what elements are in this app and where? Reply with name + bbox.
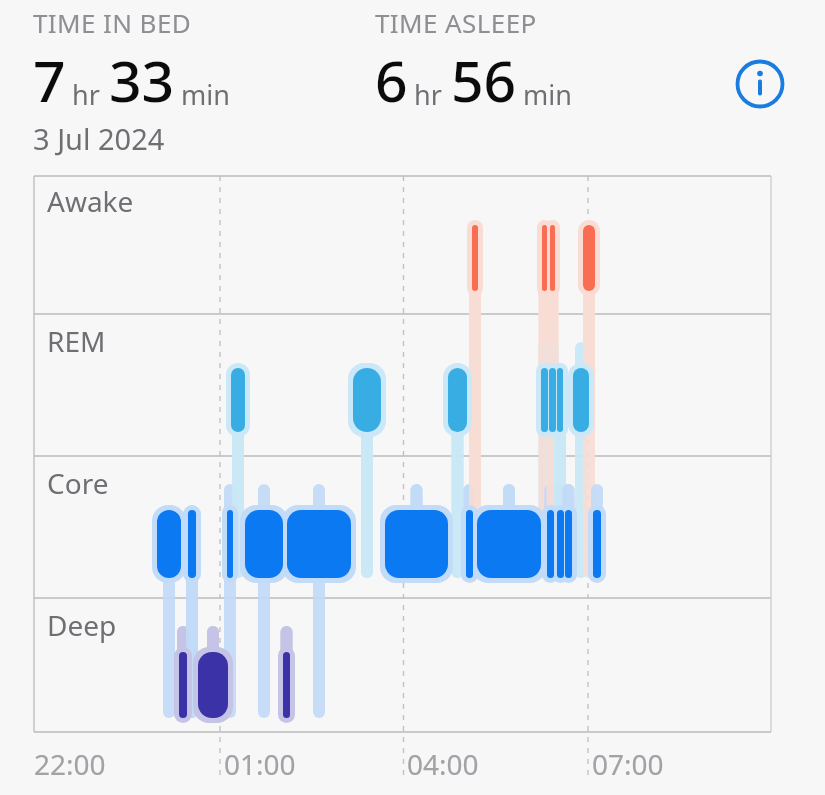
staticText: REM xyxy=(47,322,106,360)
staticText: 3 Jul 2024 xyxy=(33,119,165,158)
staticText: 6 xyxy=(375,41,408,119)
staticText: TIME IN BED xyxy=(33,5,192,40)
staticText: 22:00 xyxy=(34,745,106,783)
button[interactable]: About sleep stages xyxy=(730,54,790,114)
button[interactable]: Sleep stages chart xyxy=(0,0,825,795)
staticText: 33 xyxy=(109,41,175,119)
staticText: Deep xyxy=(47,606,117,644)
staticText: hr xyxy=(414,76,442,113)
staticText: min xyxy=(523,76,572,113)
staticText: 01:00 xyxy=(224,745,296,783)
staticText: TIME ASLEEP xyxy=(375,5,537,40)
staticText: Awake xyxy=(47,182,134,220)
staticText: min xyxy=(181,76,230,113)
staticText: hr xyxy=(72,76,100,113)
staticText: 56 xyxy=(451,41,517,119)
staticText: Core xyxy=(47,464,109,502)
staticText: 07:00 xyxy=(592,745,664,783)
staticText: 04:00 xyxy=(407,745,479,783)
staticText: 7 xyxy=(33,41,66,119)
